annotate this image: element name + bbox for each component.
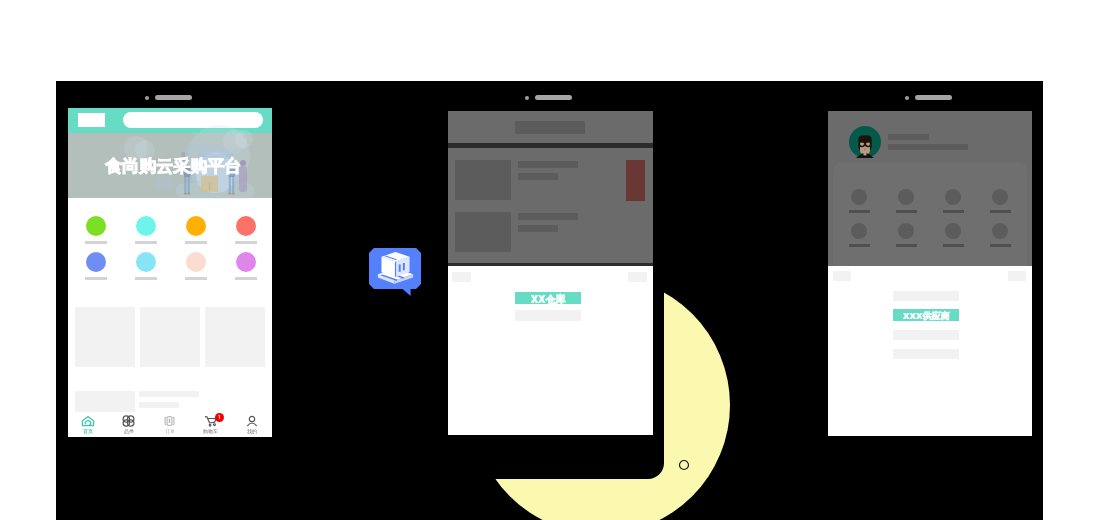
button[interactable]: Category 6 [132, 252, 160, 280]
button[interactable]: XX仓库 [515, 292, 581, 304]
button[interactable]: Category 3 [182, 216, 210, 244]
button[interactable]: Item 6 [894, 223, 918, 247]
button[interactable]: 品类 [108, 412, 149, 437]
button[interactable]: Item 3 [941, 189, 965, 213]
button[interactable]: Item 4 [988, 189, 1012, 213]
button[interactable]: 订单 [149, 412, 190, 437]
staticText: 品类 [124, 428, 134, 434]
button[interactable]: Item 2 [894, 189, 918, 213]
staticText: 我的 [247, 428, 257, 434]
button[interactable]: Item 1 [847, 189, 871, 213]
button[interactable] [75, 391, 199, 414]
staticText: 1 [218, 414, 221, 421]
staticText: 订单 [165, 428, 175, 434]
button[interactable] [455, 160, 578, 200]
button[interactable]: Category 8 [232, 252, 260, 280]
button[interactable]: Category 1 [82, 216, 110, 244]
button[interactable] [455, 212, 578, 252]
staticText: 购物车 [203, 428, 218, 434]
button[interactable]: 首页 [68, 412, 108, 437]
staticText: XX仓库 [531, 292, 566, 304]
button[interactable]: Category 7 [182, 252, 210, 280]
button[interactable]: Search [123, 112, 263, 128]
button[interactable]: Item 8 [988, 223, 1012, 247]
button[interactable]: 我的 [231, 412, 272, 437]
button[interactable]: Item 5 [847, 223, 871, 247]
button[interactable]: Item 7 [941, 223, 965, 247]
staticText: 食尚购云采购平台 [105, 156, 241, 177]
button[interactable]: Category 4 [232, 216, 260, 244]
staticText: XXX供应商 [903, 309, 950, 321]
button[interactable]: Warehouse chat [369, 248, 421, 296]
button[interactable]: XXX供应商 [893, 309, 959, 321]
button[interactable]: 1 [190, 412, 231, 437]
button[interactable]: Category 2 [132, 216, 160, 244]
button[interactable]: Category 5 [82, 252, 110, 280]
staticText: 首页 [83, 428, 93, 434]
